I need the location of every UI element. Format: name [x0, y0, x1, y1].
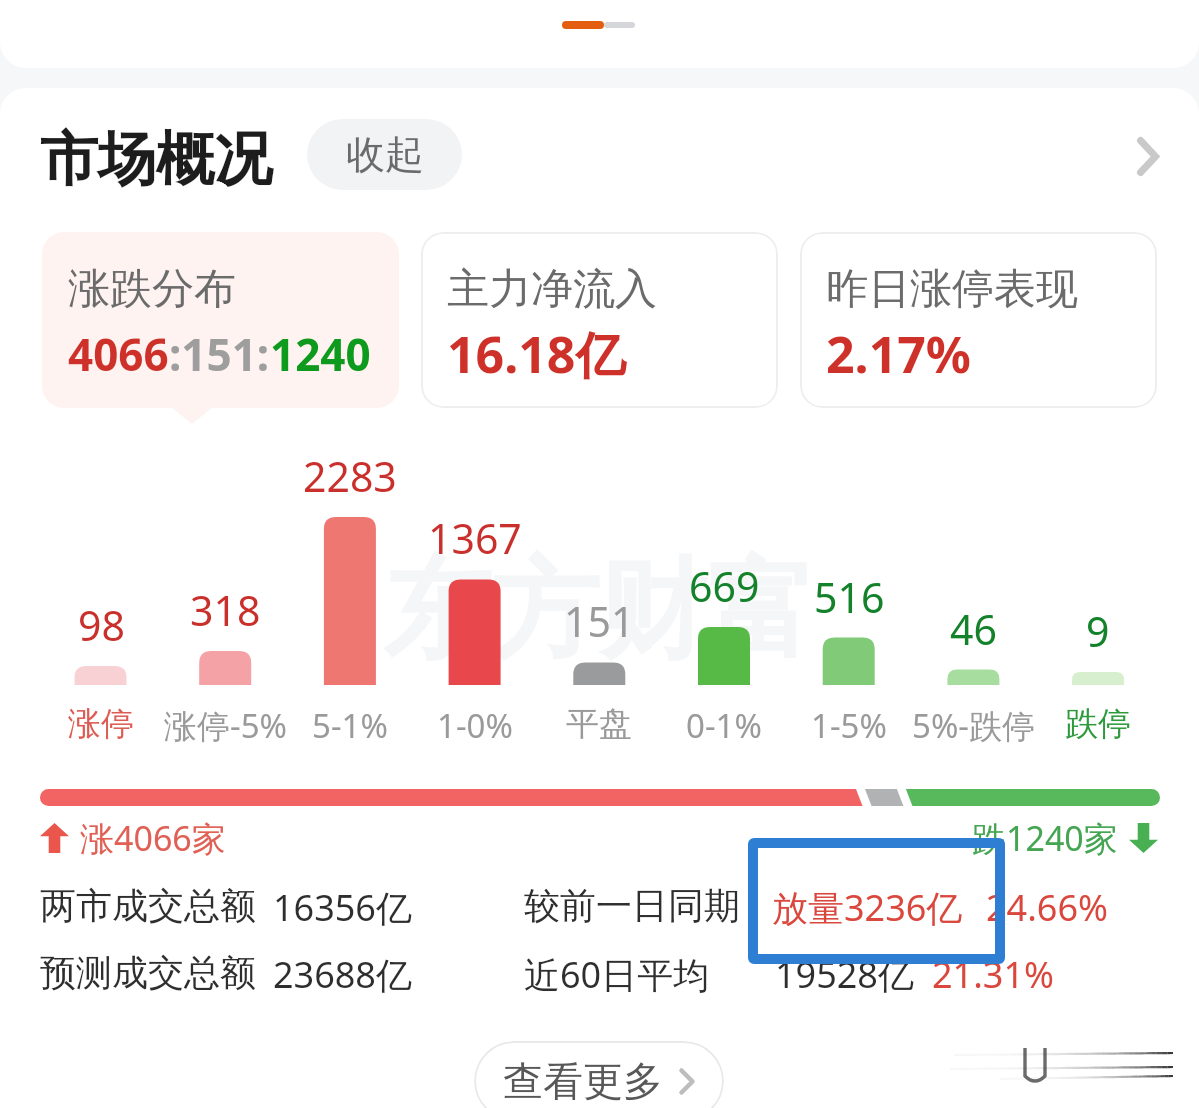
staticText: 市场概况	[40, 123, 272, 196]
staticText: 跌停	[1065, 703, 1131, 745]
staticText: 21.31%	[932, 950, 1054, 999]
staticText: 5%-跌停	[912, 703, 1035, 748]
staticText: 318	[190, 582, 261, 638]
staticText: 查看更多	[503, 1056, 663, 1106]
staticText: 23688亿	[273, 950, 412, 999]
staticText: 5-1%	[312, 703, 388, 748]
staticText: 跌1240家	[972, 815, 1118, 861]
staticText: 涨停-5%	[164, 703, 287, 748]
staticText: 1367	[428, 510, 522, 566]
button[interactable]: 主力净流入	[421, 232, 778, 408]
button[interactable]: 收起	[307, 119, 462, 190]
staticText: 涨停	[68, 703, 134, 745]
button[interactable]: 市场概况	[40, 123, 272, 196]
staticText: 1-0%	[437, 703, 513, 748]
staticText: 涨4066家	[80, 815, 226, 861]
staticText: 1240	[270, 324, 371, 384]
staticText: 主力净流入	[447, 263, 657, 316]
staticText: 16.18亿	[447, 320, 626, 388]
staticText: :151:	[169, 324, 270, 384]
staticText: 16356亿	[273, 883, 412, 932]
staticText: 19528亿	[775, 950, 914, 999]
staticText: 4066	[68, 324, 169, 384]
staticText: 9	[1086, 603, 1110, 659]
staticText: 两市成交总额	[40, 883, 256, 928]
button[interactable]: 涨跌分布	[42, 232, 399, 408]
staticText: 98	[78, 597, 125, 653]
staticText: 516	[814, 569, 885, 625]
staticText: 涨跌分布	[68, 263, 236, 316]
staticText: 预测成交总额	[40, 950, 256, 995]
staticText: 24.66%	[986, 883, 1108, 932]
staticText: 昨日涨停表现	[826, 263, 1078, 316]
button[interactable]: 昨日涨停表现	[800, 232, 1157, 408]
button[interactable]: 查看详情	[1118, 126, 1178, 186]
staticText: 较前一日同期	[524, 883, 740, 928]
staticText: 东方财富	[383, 543, 815, 679]
staticText: 0-1%	[686, 703, 762, 748]
staticText: 近60日平均	[524, 950, 710, 999]
staticText: 放量3236亿	[772, 883, 963, 932]
staticText: 平盘	[566, 703, 632, 745]
staticText: 2283	[303, 448, 397, 504]
staticText: 收起	[346, 130, 424, 179]
staticText: 1-5%	[811, 703, 887, 748]
button[interactable]: 查看更多	[474, 1041, 724, 1108]
staticText: 46	[950, 601, 997, 657]
staticText: 669	[689, 558, 760, 614]
staticText: 151	[564, 593, 635, 649]
staticText: 2.17%	[826, 320, 971, 388]
